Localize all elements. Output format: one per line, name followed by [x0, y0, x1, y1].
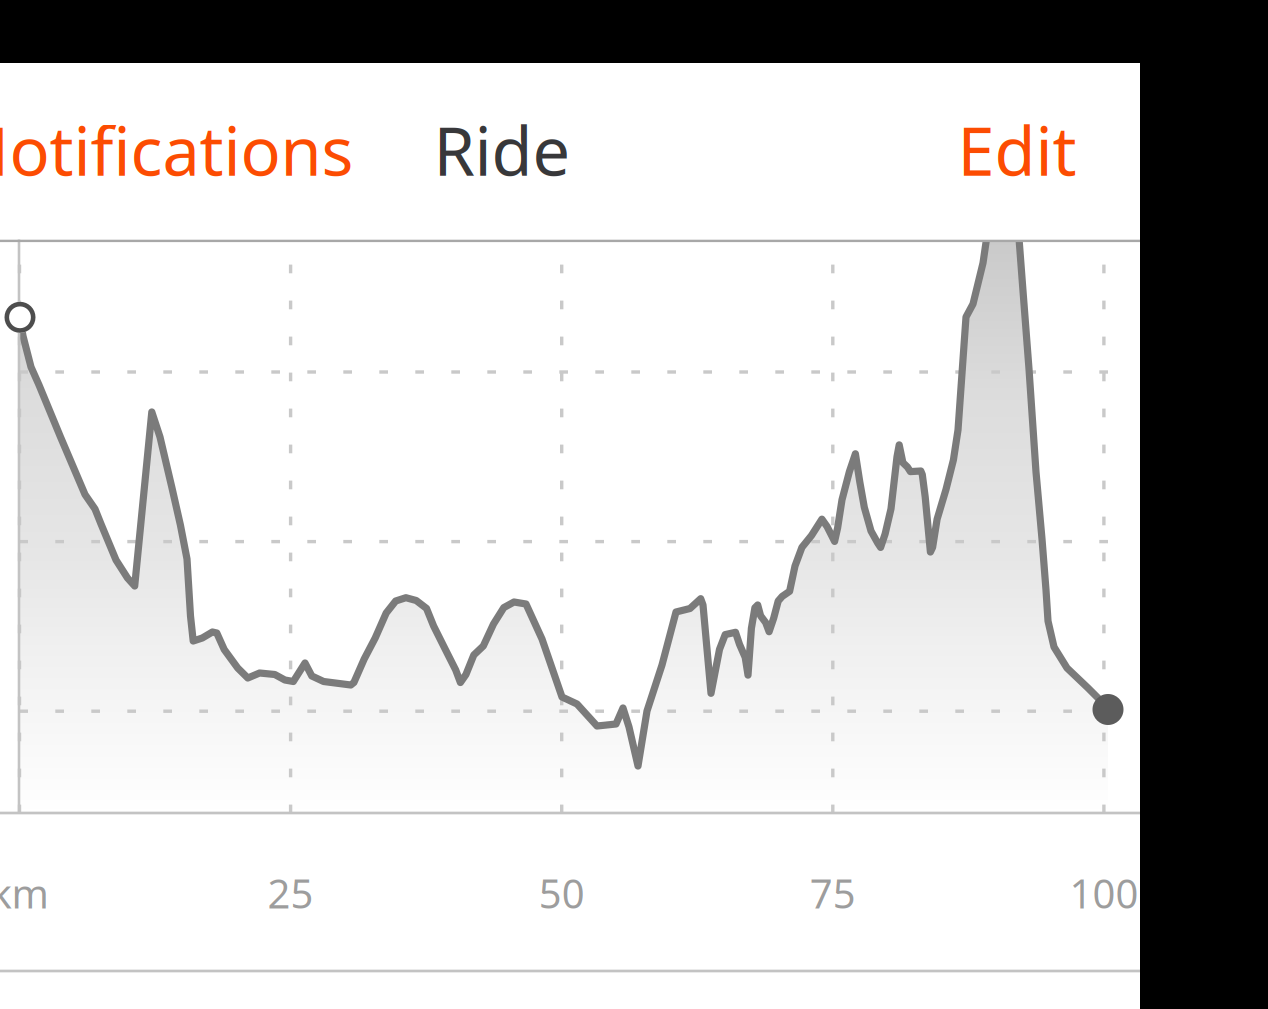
- staticText: Edit: [957, 106, 1076, 194]
- staticText: Notifications: [0, 106, 353, 194]
- staticText: 100: [1069, 866, 1138, 919]
- staticText: 25: [268, 866, 314, 919]
- staticText: 50: [539, 866, 585, 919]
- button[interactable]: Edit: [957, 106, 1076, 194]
- button[interactable]: Notifications: [0, 106, 353, 194]
- staticText: Ride: [433, 106, 570, 194]
- staticText: 75: [810, 866, 856, 919]
- staticText: km: [0, 866, 48, 919]
